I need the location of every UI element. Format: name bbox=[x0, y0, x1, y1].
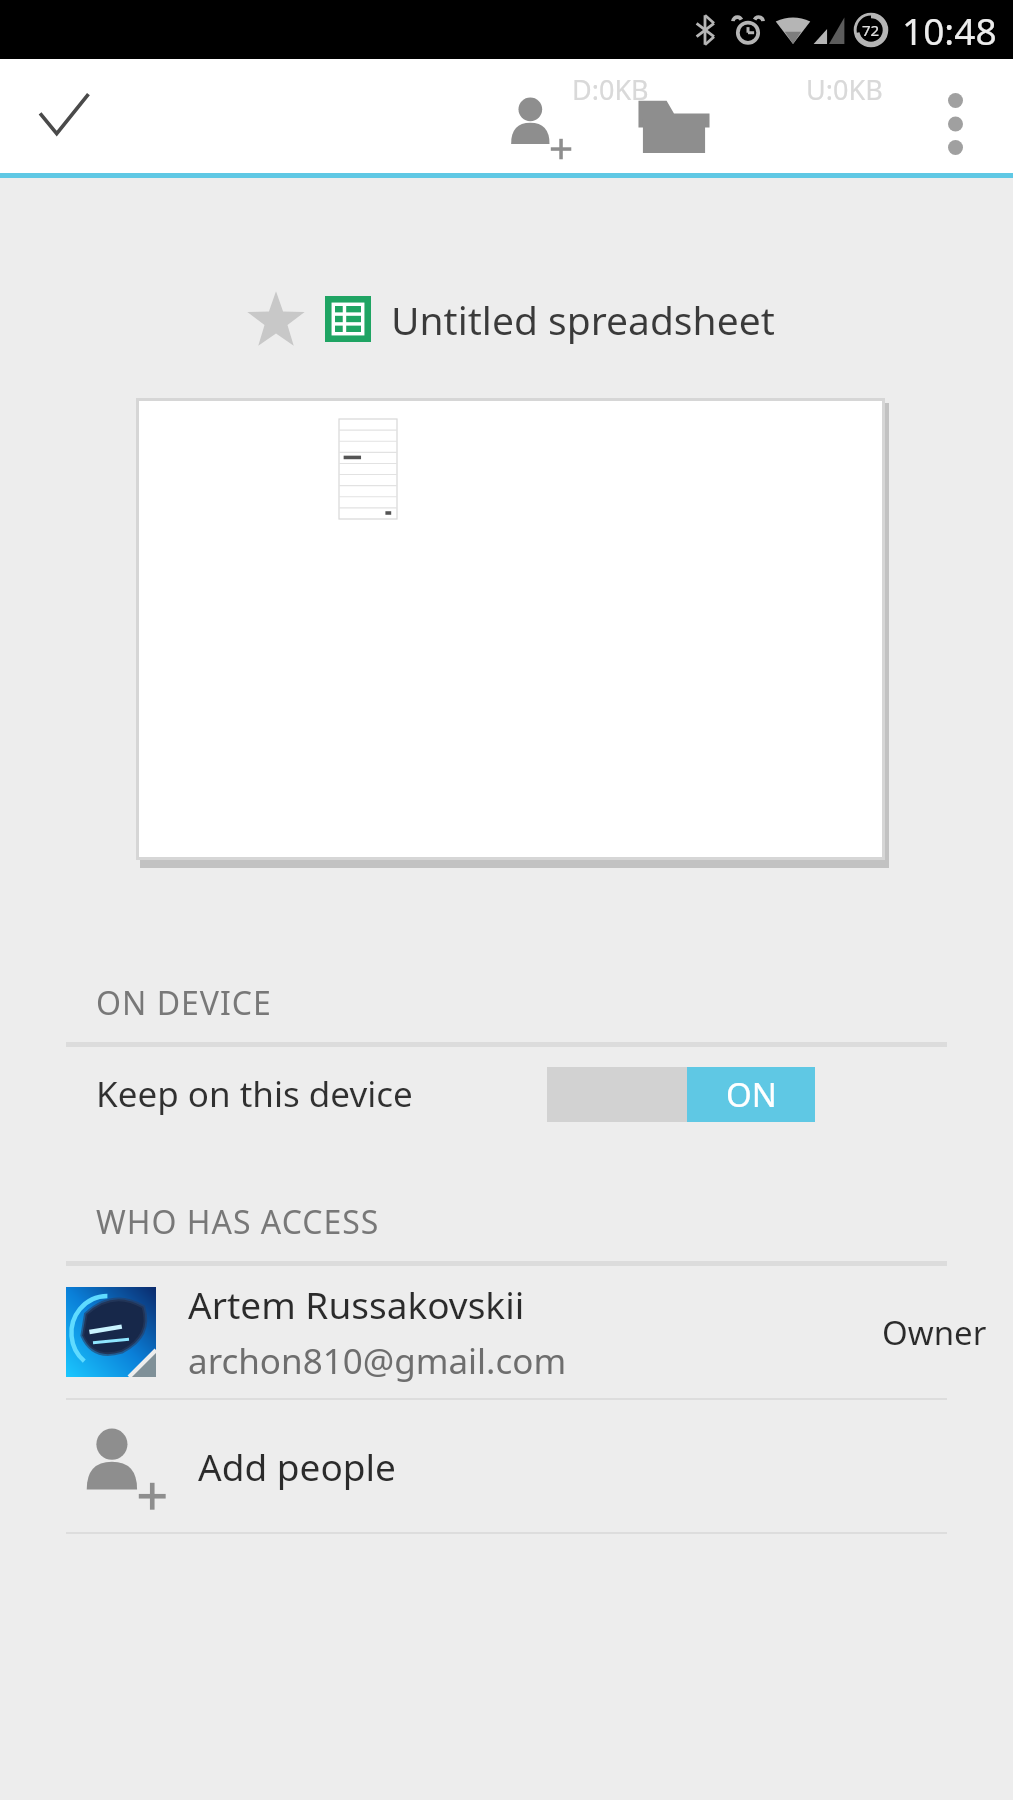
staticText: Untitled spreadsheet bbox=[391, 293, 775, 346]
staticText: D:0KB bbox=[572, 71, 649, 108]
staticText: Artem Russakovskii bbox=[188, 1279, 525, 1329]
staticText: ON bbox=[726, 1072, 777, 1117]
staticText: WHO HAS ACCESS bbox=[96, 1200, 380, 1244]
staticText: Keep on this device bbox=[96, 1070, 413, 1118]
staticText: Add people bbox=[198, 1441, 396, 1491]
button[interactable]: Artem Russakovskii bbox=[0, 1266, 1013, 1398]
staticText: ON DEVICE bbox=[96, 981, 272, 1025]
staticText: archon810@gmail.com bbox=[188, 1337, 567, 1385]
button[interactable]: Star bbox=[239, 282, 313, 356]
button[interactable]: Add people bbox=[0, 1400, 1013, 1532]
staticText: Owner bbox=[882, 1310, 987, 1355]
button[interactable]: Keep on this device bbox=[0, 1047, 1013, 1141]
button[interactable]: Done bbox=[18, 70, 110, 162]
button[interactable]: Add people bbox=[480, 69, 596, 183]
button[interactable]: More options bbox=[907, 76, 1003, 172]
button[interactable]: Move to folder bbox=[616, 67, 732, 181]
staticText: 10:48 bbox=[902, 5, 997, 55]
staticText: 72 bbox=[862, 20, 880, 40]
staticText: U:0KB bbox=[806, 71, 883, 108]
